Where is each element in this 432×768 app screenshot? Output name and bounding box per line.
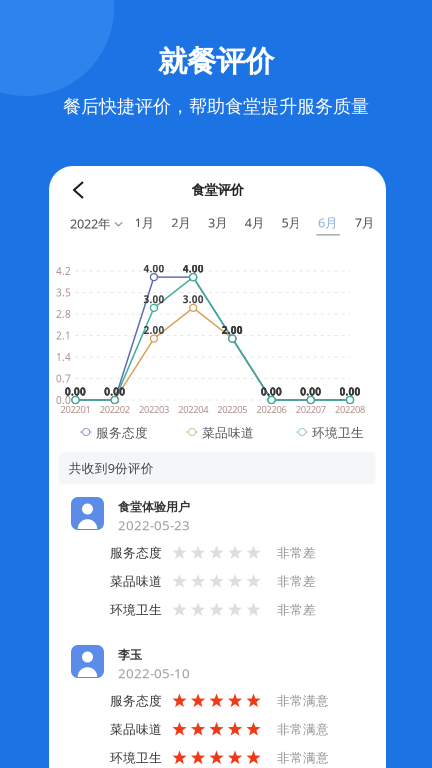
staticText: 0.00 xyxy=(300,385,321,398)
staticText: 4.00 xyxy=(183,262,204,275)
staticText: 3.00 xyxy=(143,292,164,306)
button[interactable]: 1月 xyxy=(127,214,163,246)
staticText: 环境卫生 xyxy=(312,425,364,441)
staticText: 服务态度 xyxy=(96,425,148,441)
button[interactable]: 7月 xyxy=(347,214,383,246)
staticText: 菜品味道 xyxy=(110,721,162,737)
staticText: 0.00 xyxy=(300,385,321,398)
staticText: 4.00 xyxy=(143,262,164,275)
staticText: 0.00 xyxy=(339,385,360,398)
staticText: 4月 xyxy=(245,214,265,231)
button[interactable]: 4月 xyxy=(237,214,273,246)
staticText: 3.5 xyxy=(56,286,71,299)
staticText: 服务态度 xyxy=(110,693,162,709)
staticText: 2.1 xyxy=(56,329,71,342)
staticText: 2.00 xyxy=(143,323,164,337)
staticText: 非常满意 xyxy=(277,721,329,737)
staticText: 食堂评价 xyxy=(191,182,243,198)
staticText: 202206 xyxy=(257,403,287,416)
staticText: 共收到9份评价 xyxy=(69,459,154,477)
staticText: 环境卫生 xyxy=(110,602,162,618)
staticText: 4.2 xyxy=(56,264,71,278)
staticText: 非常满意 xyxy=(277,750,329,766)
staticText: 菜品味道 xyxy=(110,573,162,589)
staticText: 菜品味道 xyxy=(202,425,254,441)
staticText: 6月 xyxy=(318,214,338,231)
staticText: 202203 xyxy=(139,403,169,416)
staticText: 1月 xyxy=(135,214,155,231)
staticText: 食堂体验用户 xyxy=(118,499,190,514)
staticText: 李玉 xyxy=(118,647,142,662)
staticText: 非常差 xyxy=(277,602,316,618)
staticText: 202204 xyxy=(178,403,208,416)
staticText: 3月 xyxy=(208,214,228,231)
staticText: 0.00 xyxy=(65,385,86,398)
staticText: 7月 xyxy=(355,214,375,231)
staticText: 5月 xyxy=(281,214,301,231)
staticText: 2022-05-10 xyxy=(118,664,190,682)
staticText: 2.00 xyxy=(222,323,243,337)
staticText: 非常差 xyxy=(277,573,316,589)
staticText: 0.0 xyxy=(56,393,71,407)
staticText: 0.00 xyxy=(339,385,360,398)
staticText: 0.00 xyxy=(104,385,125,398)
staticText: 0.00 xyxy=(104,385,125,398)
staticText: 2.00 xyxy=(222,323,243,337)
button[interactable]: 3月 xyxy=(200,214,236,246)
staticText: 4.00 xyxy=(183,262,204,275)
staticText: 就餐评价 xyxy=(158,43,274,80)
staticText: 0.00 xyxy=(339,385,360,398)
staticText: 1.4 xyxy=(56,350,71,364)
staticText: 非常差 xyxy=(277,545,316,561)
staticText: 202205 xyxy=(217,403,247,416)
button[interactable]: 返回 xyxy=(61,172,97,208)
button[interactable]: 2022年 xyxy=(70,214,130,246)
staticText: 0.00 xyxy=(65,385,86,398)
staticText: 0.00 xyxy=(261,385,282,398)
staticText: 202208 xyxy=(335,403,365,416)
staticText: 2022-05-23 xyxy=(118,516,190,534)
staticText: 0.00 xyxy=(261,385,282,398)
staticText: 0.00 xyxy=(300,385,321,398)
staticText: 2.8 xyxy=(56,307,71,321)
staticText: 2月 xyxy=(171,214,191,231)
staticText: 非常满意 xyxy=(277,693,329,709)
staticText: 202202 xyxy=(100,403,130,416)
staticText: 2.00 xyxy=(222,323,243,337)
staticText: 202207 xyxy=(296,403,326,416)
staticText: 202201 xyxy=(60,403,90,416)
button[interactable]: 6月 xyxy=(310,214,346,246)
staticText: 环境卫生 xyxy=(110,750,162,766)
staticText: 2022年 xyxy=(70,215,111,232)
staticText: 0.00 xyxy=(261,385,282,398)
staticText: 3.00 xyxy=(183,292,204,306)
button[interactable]: 2月 xyxy=(163,214,199,246)
staticText: 0.00 xyxy=(65,385,86,398)
staticText: 服务态度 xyxy=(110,545,162,561)
staticText: 0.7 xyxy=(56,372,71,385)
staticText: 0.00 xyxy=(104,385,125,398)
staticText: 餐后快捷评价，帮助食堂提升服务质量 xyxy=(63,95,369,118)
button[interactable]: 5月 xyxy=(273,214,309,246)
